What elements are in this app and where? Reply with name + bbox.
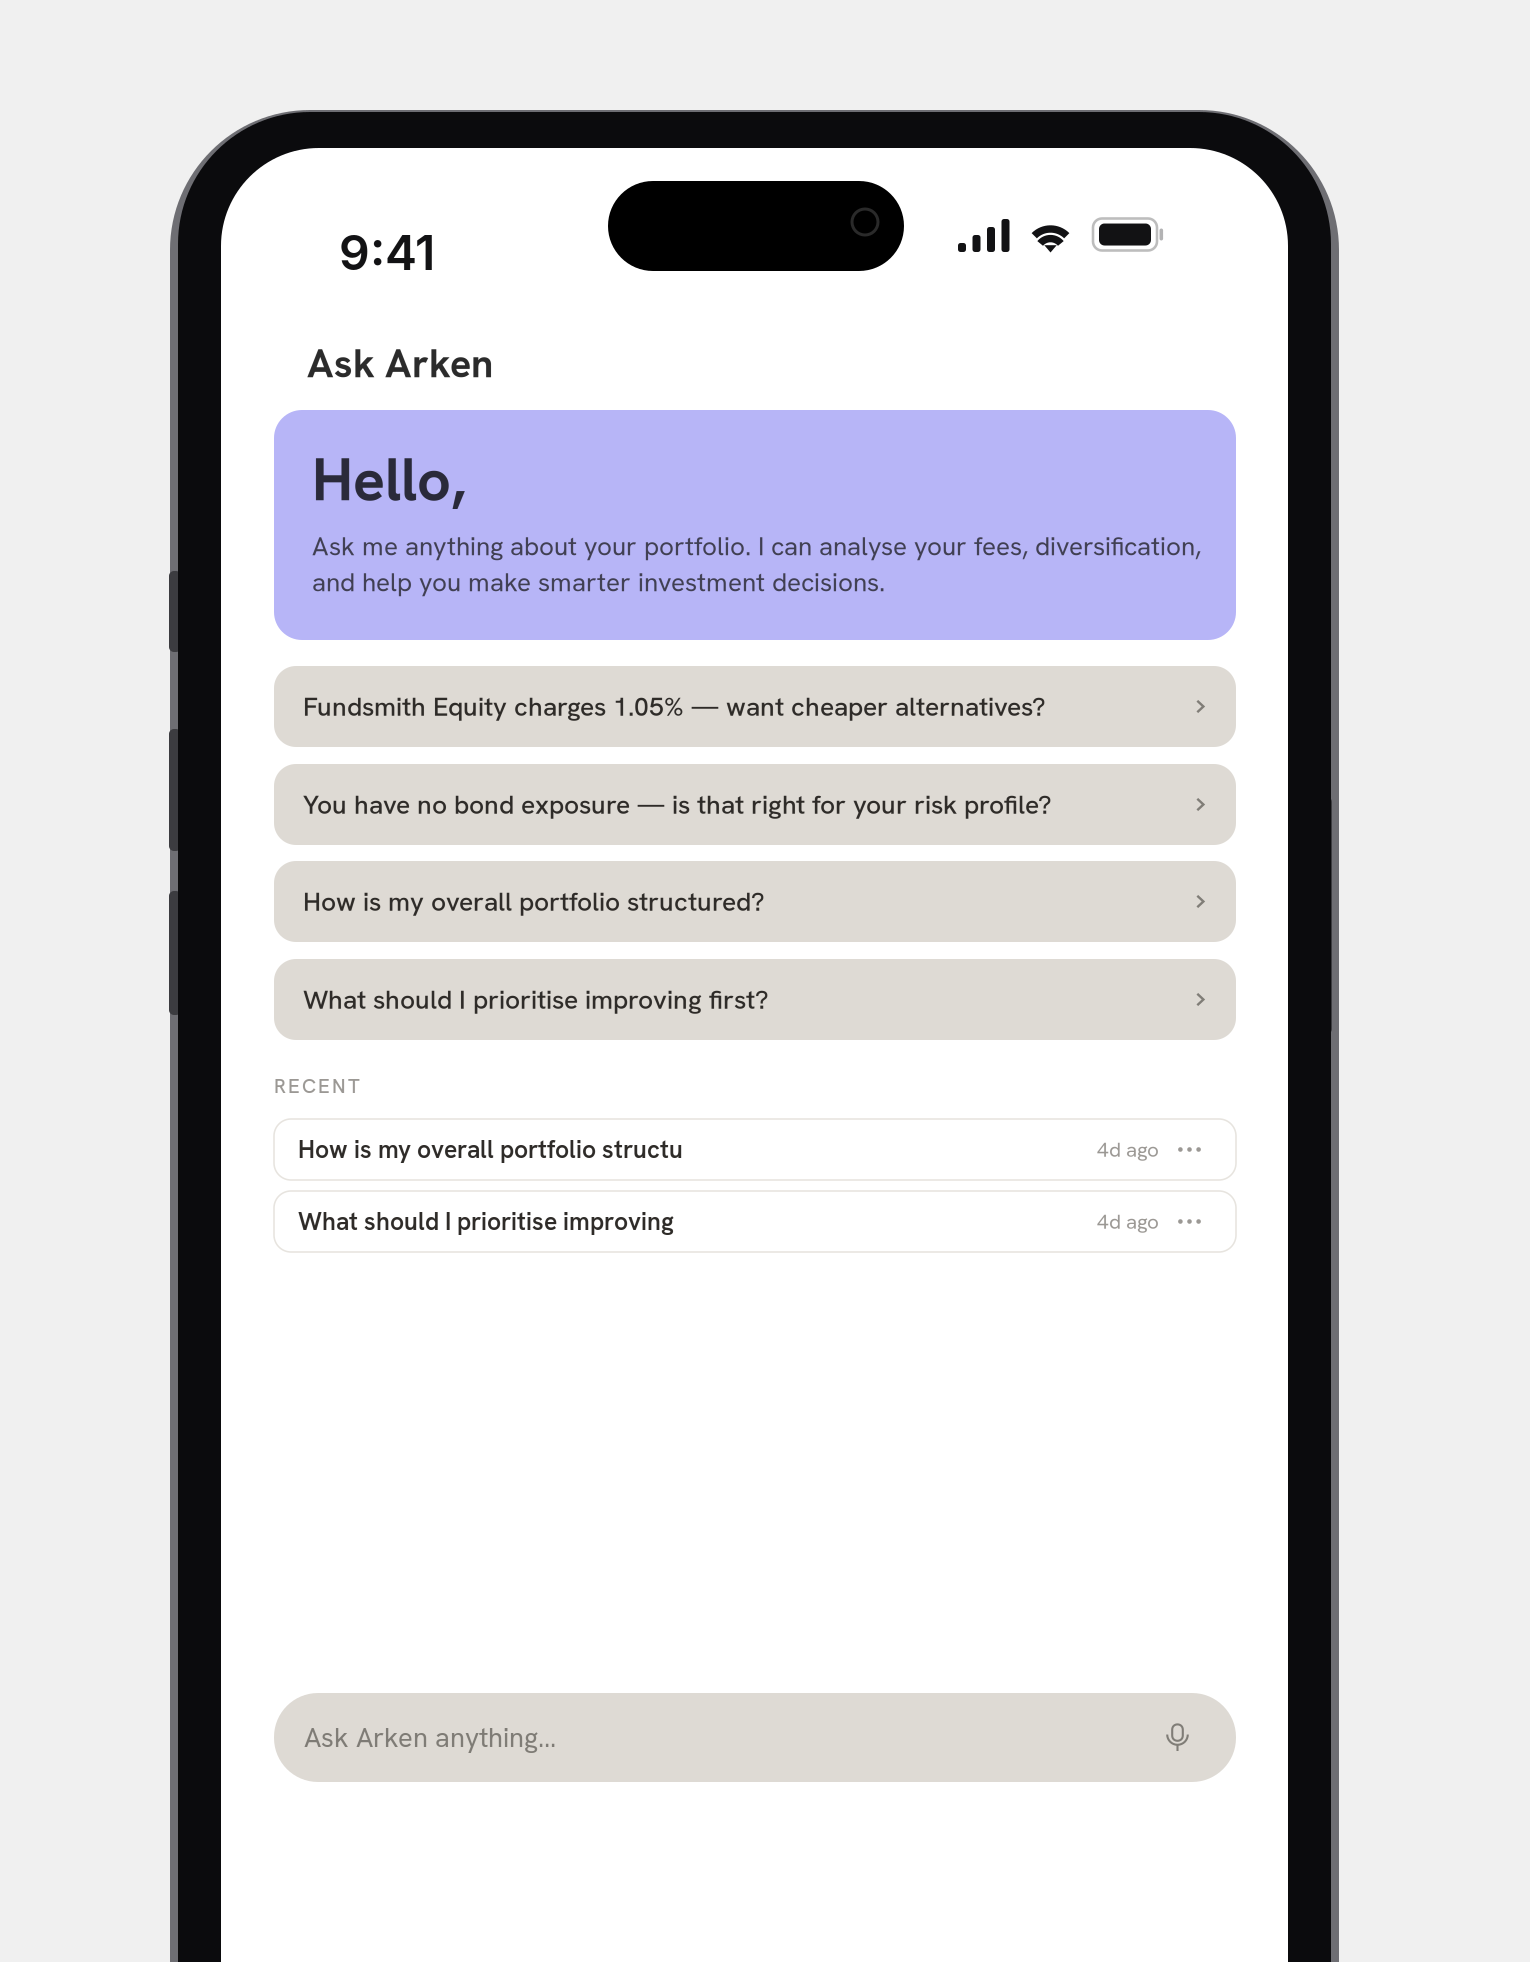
staticText: Ask Arken (307, 338, 493, 389)
staticText: Ask me anything about your portfolio. I … (312, 529, 1201, 599)
staticText: Fundsmith Equity charges 1.05% — want ch… (303, 689, 1046, 724)
button[interactable]: Fundsmith Equity charges 1.05% — want ch… (274, 666, 1236, 747)
staticText: What should I prioritise improving (298, 1205, 674, 1237)
button[interactable]: What should I prioritise improving (274, 1191, 1236, 1252)
staticText: 9:41 (339, 223, 435, 282)
staticText: RECENT (274, 1073, 360, 1099)
staticText: Hello, (312, 441, 465, 518)
staticText: How is my overall portfolio structured? (303, 884, 765, 919)
button[interactable]: How is my overall portfolio structured? (274, 861, 1236, 942)
staticText: Ask Arken anything… (304, 1720, 556, 1755)
button[interactable]: You have no bond exposure — is that righ… (274, 764, 1236, 845)
button[interactable]: Ask Arken anything… (274, 1693, 1236, 1782)
staticText: 4d ago (1097, 1136, 1159, 1163)
staticText: You have no bond exposure — is that righ… (303, 787, 1052, 822)
button[interactable]: What should I prioritise improving first… (274, 959, 1236, 1040)
staticText: What should I prioritise improving first… (303, 982, 769, 1017)
button[interactable]: How is my overall portfolio structu (274, 1119, 1236, 1180)
staticText: 4d ago (1097, 1208, 1159, 1235)
staticText: How is my overall portfolio structu (298, 1133, 683, 1165)
